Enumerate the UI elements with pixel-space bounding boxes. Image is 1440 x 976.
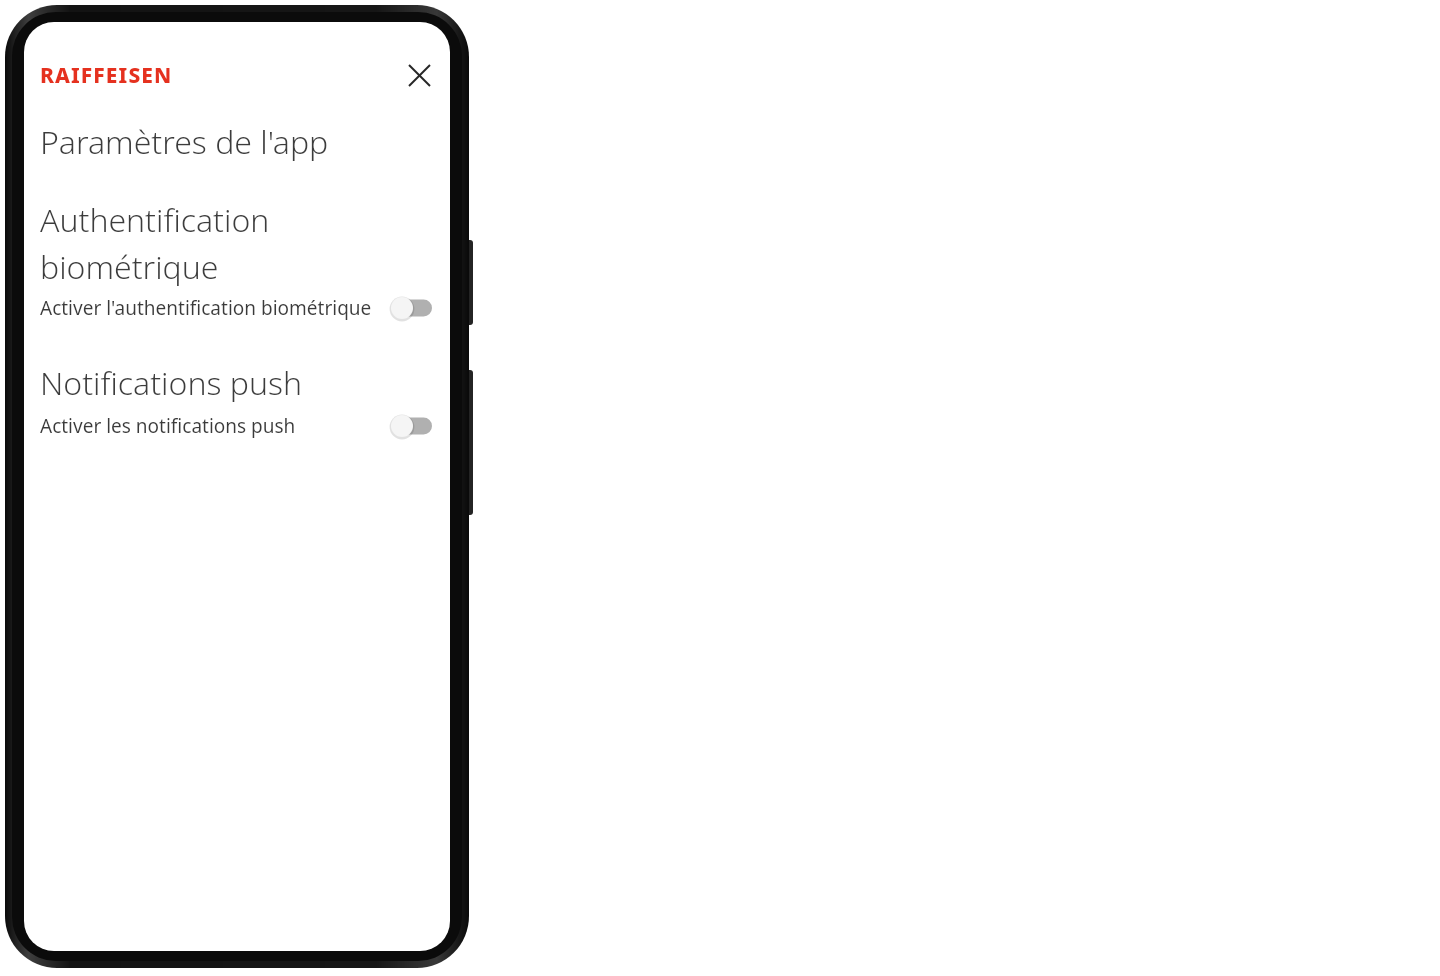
staticText: Activer l'authentification biométrique (40, 295, 382, 321)
staticText: Notifications push (40, 361, 302, 405)
button[interactable]: Activer (390, 411, 434, 441)
button[interactable]: Fermer (396, 52, 442, 98)
staticText: Activer les notifications push (40, 413, 382, 439)
staticText: Paramètres de l'app (40, 120, 329, 164)
button[interactable]: Activer l'authentification biométrique (24, 293, 450, 323)
staticText: RAIFFEISEN (40, 61, 173, 90)
button[interactable]: Activer (390, 293, 434, 323)
button[interactable]: Activer les notifications push (24, 411, 450, 441)
staticText: Authentification biométrique (40, 198, 392, 288)
